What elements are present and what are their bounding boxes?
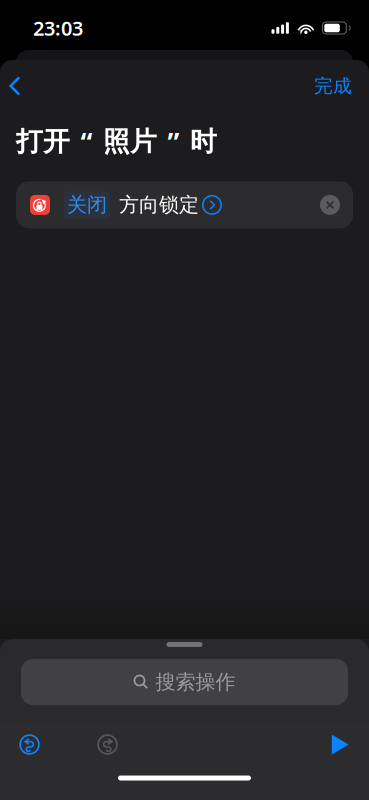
button[interactable]: 完成 — [302, 62, 369, 109]
staticText: 打开 — [16, 125, 70, 158]
button[interactable]: Run — [322, 725, 358, 763]
button[interactable]: 关闭 — [16, 181, 353, 228]
staticText: 时 — [190, 125, 217, 158]
button[interactable]: Undo — [10, 725, 49, 764]
staticText: 照片 — [103, 125, 157, 158]
staticText: 搜索操作 — [155, 670, 235, 694]
staticText: ” — [167, 124, 179, 159]
staticText: 关闭 — [67, 193, 107, 217]
staticText: 完成 — [314, 74, 352, 97]
staticText: 方向锁定 — [119, 193, 199, 217]
button[interactable]: Back — [0, 64, 33, 108]
staticText: “ — [80, 124, 92, 159]
button[interactable]: Redo — [88, 725, 127, 764]
button[interactable]: 搜索操作 — [21, 659, 348, 705]
staticText: 23:03 — [33, 15, 83, 41]
